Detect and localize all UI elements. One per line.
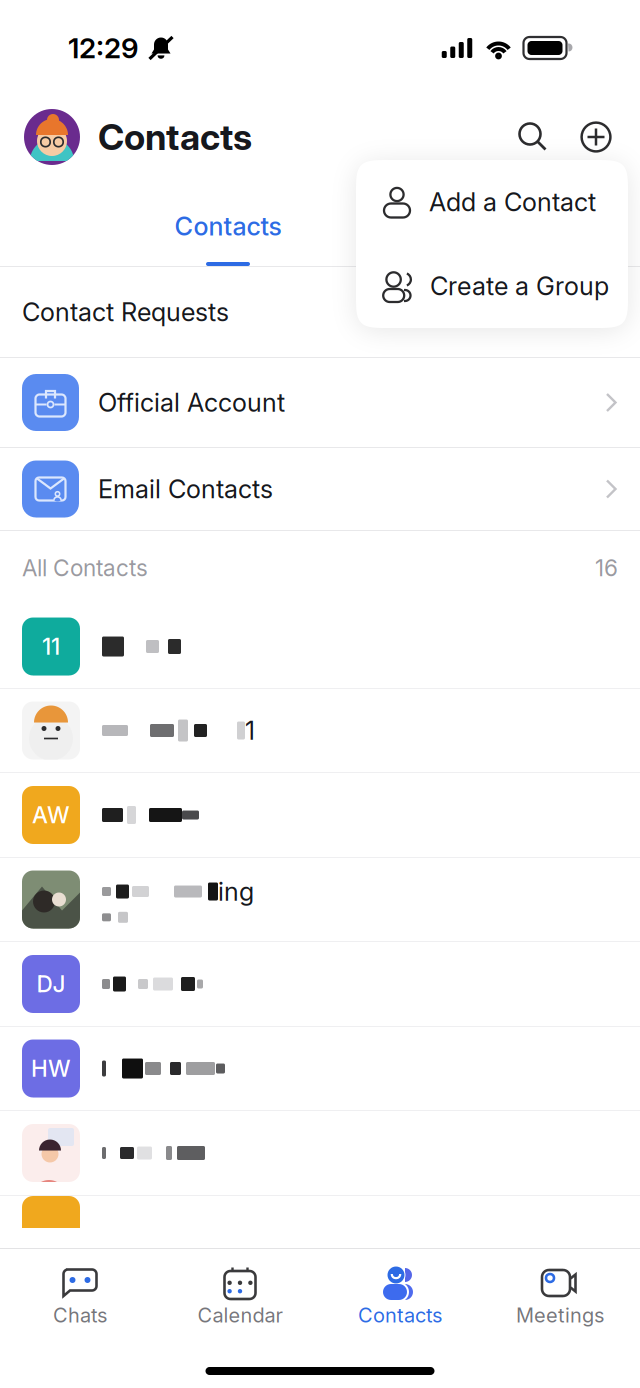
button[interactable]: HW <box>0 1027 640 1111</box>
staticText: Meetings <box>516 1303 604 1327</box>
button[interactable] <box>0 1111 640 1196</box>
staticText: All Contacts <box>22 554 148 582</box>
staticText: Official Account <box>98 387 285 418</box>
staticText: Create a Group <box>430 271 609 301</box>
staticText: Add a Contact <box>429 187 596 217</box>
staticText: Chats <box>53 1303 107 1327</box>
button[interactable]: Chats <box>0 1249 160 1341</box>
staticText: Channels <box>492 211 604 242</box>
staticText: 11 <box>42 633 60 660</box>
button[interactable]: DJ <box>0 942 640 1027</box>
button[interactable]: Calendar <box>160 1249 320 1341</box>
button[interactable]: ing <box>0 858 640 942</box>
button[interactable]: Contacts <box>68 178 388 266</box>
staticText: Calendar <box>197 1303 282 1327</box>
staticText: HW <box>31 1055 71 1082</box>
staticText: Contact Requests <box>22 297 229 327</box>
button[interactable]: Create a Group <box>356 244 628 328</box>
button[interactable]: Profile <box>24 109 80 165</box>
button[interactable]: Email Contacts <box>0 448 640 531</box>
button[interactable]: AW <box>0 773 640 858</box>
button[interactable]: 11 <box>0 605 640 689</box>
button[interactable]: Search <box>516 120 550 154</box>
button[interactable]: Add a Contact <box>356 160 628 244</box>
staticText: DJ <box>36 970 65 998</box>
staticText: 12:29 <box>68 31 139 65</box>
button[interactable]: Contacts <box>320 1249 480 1341</box>
staticText: ing <box>218 876 254 907</box>
staticText: Contacts <box>174 211 281 242</box>
staticText: AW <box>32 801 70 829</box>
staticText: 1 <box>245 715 255 746</box>
button[interactable]: 1 <box>0 689 640 773</box>
staticText: Contacts <box>98 115 252 159</box>
button[interactable]: Meetings <box>480 1249 640 1341</box>
button[interactable]: Contact Requests <box>0 267 640 358</box>
staticText: 16 <box>595 554 618 582</box>
staticText: Contacts <box>358 1303 442 1327</box>
button[interactable]: Official Account <box>0 358 640 448</box>
staticText: Email Contacts <box>98 474 273 504</box>
button[interactable]: Add <box>579 120 613 154</box>
button[interactable]: Channels <box>388 178 640 266</box>
